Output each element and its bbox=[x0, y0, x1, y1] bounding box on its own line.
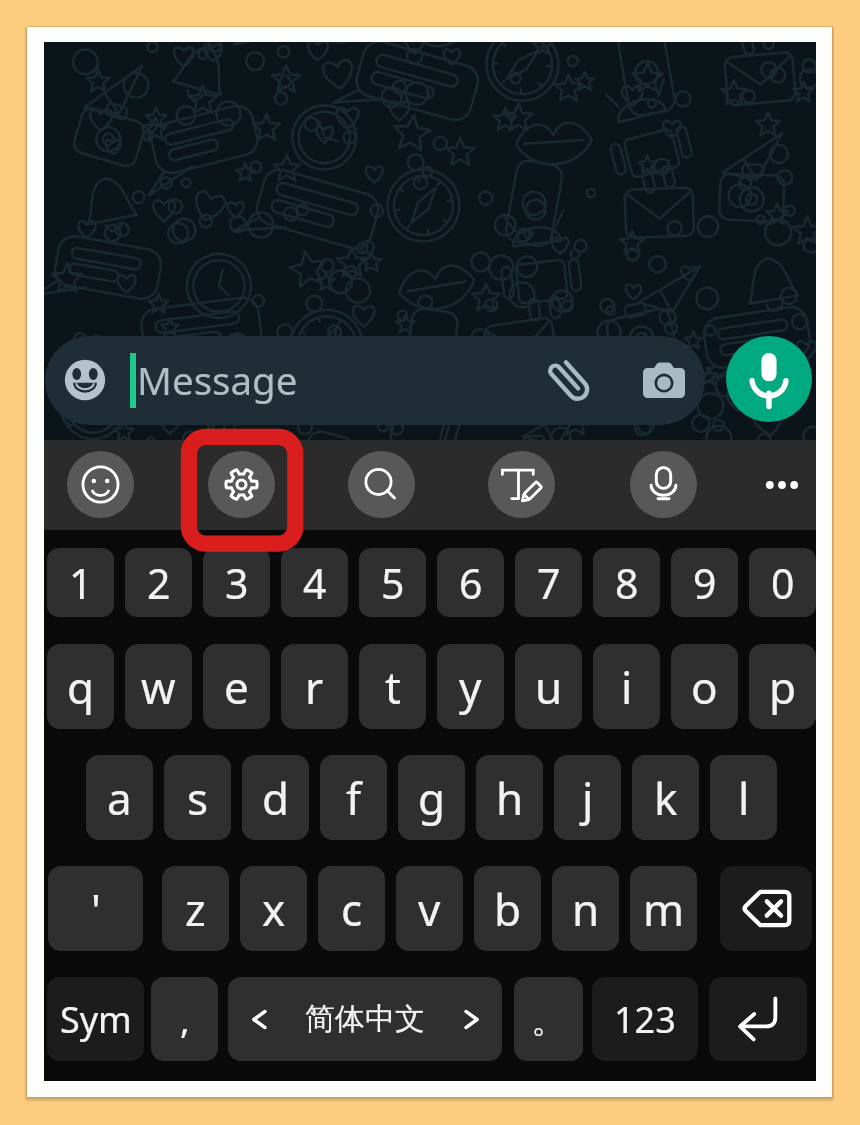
button[interactable]: Emoji bbox=[67, 451, 134, 518]
button[interactable]: 2 bbox=[125, 548, 192, 617]
button[interactable]: w bbox=[125, 644, 192, 729]
button[interactable]: s bbox=[164, 755, 231, 840]
staticText: c bbox=[341, 879, 363, 939]
button[interactable]: x bbox=[240, 866, 307, 951]
button[interactable]: k bbox=[632, 755, 699, 840]
button[interactable]: h bbox=[476, 755, 543, 840]
button[interactable]: 4 bbox=[281, 548, 348, 617]
staticText: n bbox=[572, 879, 600, 939]
button[interactable]: y bbox=[437, 644, 504, 729]
staticText: 0 bbox=[771, 555, 795, 611]
staticText: i bbox=[621, 657, 633, 717]
button[interactable]: j bbox=[554, 755, 621, 840]
button[interactable]: z bbox=[162, 866, 229, 951]
button[interactable]: o bbox=[671, 644, 738, 729]
staticText: Message bbox=[137, 354, 298, 406]
button[interactable]: Voice input bbox=[630, 451, 697, 518]
button[interactable]: 简体中文 bbox=[228, 977, 502, 1061]
button[interactable]: v bbox=[396, 866, 463, 951]
button[interactable]: Emoji bbox=[61, 356, 109, 404]
staticText: y bbox=[459, 657, 482, 717]
button[interactable]: ' bbox=[48, 866, 143, 951]
staticText: 4 bbox=[303, 555, 327, 611]
staticText: 9 bbox=[693, 555, 717, 611]
staticText: t bbox=[385, 657, 401, 717]
staticText: 8 bbox=[615, 555, 639, 611]
button[interactable]: Backspace bbox=[720, 866, 812, 951]
button[interactable]: More options bbox=[749, 452, 815, 518]
button[interactable]: 6 bbox=[437, 548, 504, 617]
button[interactable]: 8 bbox=[593, 548, 660, 617]
button[interactable]: b bbox=[474, 866, 541, 951]
button[interactable]: n bbox=[552, 866, 619, 951]
button[interactable]: Camera bbox=[634, 351, 694, 411]
staticText: 。 bbox=[531, 997, 567, 1042]
staticText: o bbox=[691, 657, 718, 717]
other: Backspace bbox=[740, 882, 793, 935]
staticText: 123 bbox=[614, 995, 676, 1044]
staticText: 1 bbox=[69, 555, 93, 611]
button[interactable]: a bbox=[86, 755, 153, 840]
staticText: s bbox=[187, 768, 209, 828]
button[interactable]: Handwriting input bbox=[488, 451, 555, 518]
staticText: f bbox=[346, 768, 362, 828]
button[interactable]: 1 bbox=[47, 548, 114, 617]
button[interactable]: Voice message bbox=[726, 336, 812, 422]
staticText: d bbox=[262, 768, 290, 828]
staticText: g bbox=[418, 768, 446, 828]
button[interactable]: 123 bbox=[592, 977, 698, 1061]
button[interactable]: 0 bbox=[749, 548, 816, 617]
button[interactable]: t bbox=[359, 644, 426, 729]
staticText: a bbox=[107, 768, 132, 828]
button[interactable]: e bbox=[203, 644, 270, 729]
button[interactable]: 9 bbox=[671, 548, 738, 617]
button[interactable]: g bbox=[398, 755, 465, 840]
staticText: w bbox=[141, 657, 176, 717]
button[interactable]: , bbox=[151, 977, 218, 1061]
staticText: 7 bbox=[537, 555, 561, 611]
button[interactable]: r bbox=[281, 644, 348, 729]
button[interactable]: Attach bbox=[542, 353, 602, 413]
staticText: q bbox=[67, 657, 95, 717]
button[interactable]: Search bbox=[348, 451, 415, 518]
other: Enter bbox=[727, 988, 789, 1050]
button[interactable]: q bbox=[47, 644, 114, 729]
staticText: Sym bbox=[60, 995, 132, 1044]
button[interactable]: u bbox=[515, 644, 582, 729]
staticText: 简体中文 bbox=[305, 1000, 425, 1038]
button[interactable]: 7 bbox=[515, 548, 582, 617]
button[interactable]: Sym bbox=[47, 977, 144, 1061]
button[interactable] bbox=[45, 336, 705, 425]
button[interactable]: 3 bbox=[203, 548, 270, 617]
staticText: v bbox=[418, 879, 441, 939]
staticText: ' bbox=[91, 879, 101, 939]
button[interactable]: l bbox=[710, 755, 777, 840]
button[interactable]: d bbox=[242, 755, 309, 840]
button[interactable]: f bbox=[320, 755, 387, 840]
staticText: z bbox=[185, 879, 206, 939]
button[interactable]: c bbox=[318, 866, 385, 951]
staticText: 3 bbox=[225, 555, 249, 611]
button[interactable]: 5 bbox=[359, 548, 426, 617]
staticText: x bbox=[262, 879, 286, 939]
staticText: 6 bbox=[459, 555, 483, 611]
button[interactable]: Enter bbox=[709, 977, 807, 1061]
staticText: , bbox=[180, 995, 190, 1044]
staticText: l bbox=[738, 768, 750, 828]
staticText: m bbox=[643, 879, 685, 939]
button[interactable]: Settings bbox=[208, 451, 275, 518]
staticText: e bbox=[224, 657, 249, 717]
staticText: k bbox=[654, 768, 678, 828]
staticText: p bbox=[769, 657, 797, 717]
button[interactable]: m bbox=[630, 866, 697, 951]
button[interactable]: 。 bbox=[514, 977, 583, 1061]
staticText: b bbox=[494, 879, 522, 939]
button[interactable]: p bbox=[749, 644, 816, 729]
staticText: r bbox=[305, 657, 324, 717]
staticText: 2 bbox=[147, 555, 171, 611]
staticText: j bbox=[582, 768, 594, 828]
staticText: 5 bbox=[381, 555, 405, 611]
staticText: h bbox=[496, 768, 524, 828]
button[interactable]: i bbox=[593, 644, 660, 729]
staticText: u bbox=[535, 657, 563, 717]
